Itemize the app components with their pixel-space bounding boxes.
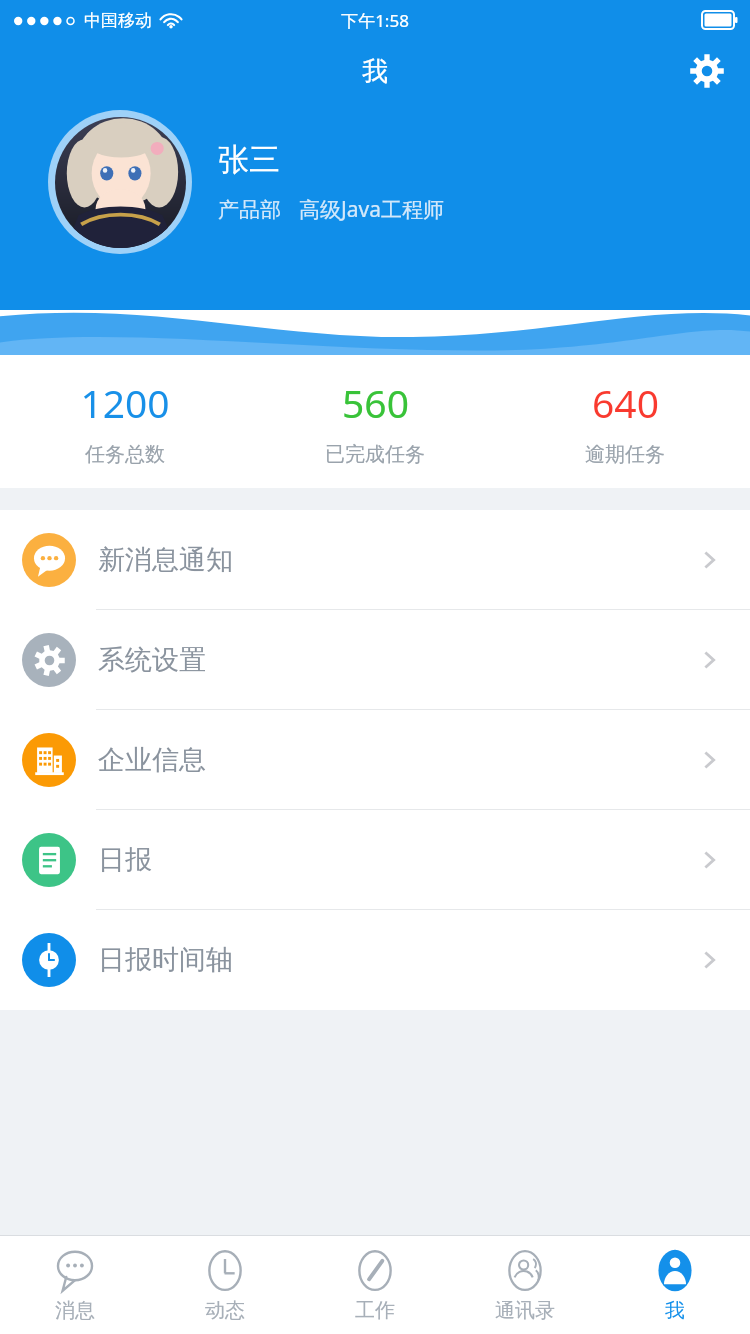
staticText: 任务总数 [85, 442, 165, 467]
staticText: 张三 [218, 140, 280, 179]
button[interactable]: Settings [680, 44, 734, 98]
staticText: 消息 [55, 1298, 95, 1323]
button[interactable]: Profile photo [48, 110, 192, 254]
staticText: 下午1:58 [341, 9, 409, 32]
staticText: 中国移动 [84, 10, 152, 31]
button[interactable]: 我 [600, 1236, 750, 1334]
button[interactable]: 系统设置 [0, 610, 750, 710]
button[interactable]: 日报时间轴 [0, 910, 750, 1010]
button[interactable]: 动态 [150, 1236, 300, 1334]
button[interactable]: 通讯录 [450, 1236, 600, 1334]
staticText: 640 [592, 376, 659, 429]
staticText: 通讯录 [495, 1298, 555, 1323]
staticText: 系统设置 [98, 643, 206, 677]
staticText: 动态 [205, 1298, 245, 1323]
staticText: 560 [342, 376, 409, 429]
staticText: 1200 [80, 376, 170, 429]
staticText: 已完成任务 [325, 442, 425, 467]
staticText: 日报 [98, 843, 152, 877]
staticText: 逾期任务 [585, 442, 665, 467]
staticText: 我 [362, 55, 388, 88]
staticText: 工作 [355, 1298, 395, 1323]
staticText: 产品部 [218, 197, 281, 223]
button[interactable]: 工作 [300, 1236, 450, 1334]
staticText: 高级Java工程师 [299, 195, 444, 224]
staticText: 新消息通知 [98, 543, 233, 577]
button[interactable]: 新消息通知 [0, 510, 750, 610]
button[interactable]: 消息 [0, 1236, 150, 1334]
button[interactable]: 日报 [0, 810, 750, 910]
staticText: 我 [665, 1298, 685, 1323]
button[interactable]: 640 [500, 355, 750, 488]
button[interactable]: 企业信息 [0, 710, 750, 810]
staticText: 日报时间轴 [98, 943, 233, 977]
button[interactable]: 1200 [0, 355, 250, 488]
button[interactable]: 560 [250, 355, 500, 488]
staticText: 企业信息 [98, 743, 206, 777]
